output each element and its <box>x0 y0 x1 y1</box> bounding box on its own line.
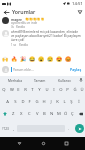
button[interactable]: Ç <box>69 108 76 120</box>
button[interactable]: K <box>54 96 61 108</box>
button[interactable]: A <box>3 96 11 108</box>
button[interactable]: , <box>11 120 17 137</box>
button[interactable]: H <box>40 96 47 108</box>
button[interactable]: Ğ <box>71 84 78 96</box>
button[interactable]: V <box>33 108 41 120</box>
button[interactable]: Paylaş <box>69 66 83 73</box>
button[interactable]: D <box>19 96 26 108</box>
staticText: 😂 <box>29 56 36 62</box>
button[interactable]: 🙌 <box>1 55 9 63</box>
button[interactable]: Send <box>75 124 84 133</box>
staticText: T <box>31 87 34 93</box>
staticText: Ü <box>80 87 84 93</box>
button[interactable]: O <box>57 84 64 96</box>
button[interactable]: X <box>17 108 25 120</box>
staticText: J <box>50 99 52 105</box>
staticText: A <box>6 99 9 105</box>
staticText: Paylaş <box>70 67 82 72</box>
button[interactable]: Shift <box>0 108 9 120</box>
button[interactable]: İ <box>75 96 82 108</box>
button[interactable]: Merhaba <box>2 76 27 84</box>
button[interactable]: 🎉 <box>19 55 27 63</box>
staticText: I <box>53 87 55 93</box>
staticText: Y <box>38 87 41 93</box>
button[interactable]: Recents <box>61 138 71 148</box>
button[interactable]: E <box>15 84 22 96</box>
button[interactable]: R <box>22 84 29 96</box>
button[interactable]: U <box>43 84 50 96</box>
button[interactable]: Share <box>76 8 84 16</box>
button[interactable]: L <box>61 96 68 108</box>
staticText: İ <box>78 99 80 105</box>
staticText: 🙌 <box>2 56 9 62</box>
button[interactable]: Home <box>38 138 48 148</box>
staticText: X <box>20 111 23 117</box>
button[interactable]: I <box>50 84 57 96</box>
button[interactable]: ?123 <box>0 120 11 137</box>
staticText: ahmt89 Benimlerd mi çok kazandım, eliniz… <box>11 30 82 42</box>
staticText: 3s <box>11 25 14 29</box>
button[interactable]: 😮 <box>37 55 45 63</box>
staticText: Ş <box>70 99 73 105</box>
staticText: Ç <box>71 111 74 117</box>
button[interactable]: Ö <box>62 108 69 120</box>
button[interactable]: Voice input <box>77 76 84 84</box>
button[interactable]: Z <box>9 108 17 120</box>
staticText: P <box>66 87 69 93</box>
button[interactable]: Ü <box>78 84 85 96</box>
button[interactable]: Back <box>14 138 24 148</box>
button[interactable]: Ş <box>68 96 75 108</box>
staticText: D <box>21 99 25 105</box>
staticText: G <box>35 99 39 105</box>
staticText: V <box>36 111 39 117</box>
staticText: 🔥 <box>11 56 18 62</box>
button[interactable]: Q <box>0 84 8 96</box>
button[interactable]: W <box>8 84 15 96</box>
staticText: L <box>63 99 66 105</box>
staticText: E <box>17 87 20 93</box>
staticText: 😡 <box>65 56 72 62</box>
staticText: Kullanıcı <box>58 78 71 82</box>
staticText: O <box>59 87 63 93</box>
staticText: N <box>50 111 54 117</box>
button[interactable]: Tamam <box>27 76 52 84</box>
button[interactable]: 😢 <box>46 55 54 63</box>
staticText: , <box>13 126 15 131</box>
button[interactable]: T <box>29 84 36 96</box>
staticText: M <box>57 111 61 117</box>
button[interactable]: N <box>48 108 55 120</box>
button[interactable]: C <box>25 108 33 120</box>
staticText: 😢 <box>47 56 54 62</box>
button[interactable]: 🔥 <box>10 55 18 63</box>
button[interactable]: 😍 <box>55 55 63 63</box>
staticText: Yanıtla <box>19 43 28 47</box>
button[interactable]: Back <box>2 8 10 16</box>
staticText: 😮 <box>38 56 45 62</box>
staticText: U <box>45 87 49 93</box>
button[interactable]: F <box>26 96 33 108</box>
button[interactable]: Y <box>36 84 43 96</box>
staticText: ?123 <box>2 127 9 131</box>
button[interactable]: S <box>11 96 19 108</box>
button[interactable]: Kullanıcı <box>52 76 77 84</box>
staticText: W <box>10 87 14 93</box>
staticText: Tamam <box>34 78 46 82</box>
staticText: . <box>68 126 70 131</box>
staticText: B <box>43 111 46 117</box>
staticText: Ğ <box>73 87 77 93</box>
staticText: 😍 <box>56 56 63 62</box>
button[interactable]: 😡 <box>64 55 72 63</box>
button[interactable]: B <box>41 108 48 120</box>
button[interactable]: M <box>55 108 62 120</box>
button[interactable]: G <box>33 96 40 108</box>
button[interactable]: Backspace <box>76 108 85 120</box>
staticText: R <box>24 87 27 93</box>
staticText: 1 sa <box>11 43 17 47</box>
button[interactable]: J <box>47 96 54 108</box>
staticText: magee_ <box>11 17 24 21</box>
staticText: F <box>28 99 31 105</box>
button[interactable]: 😂 <box>28 55 36 63</box>
button[interactable]: P <box>64 84 71 96</box>
